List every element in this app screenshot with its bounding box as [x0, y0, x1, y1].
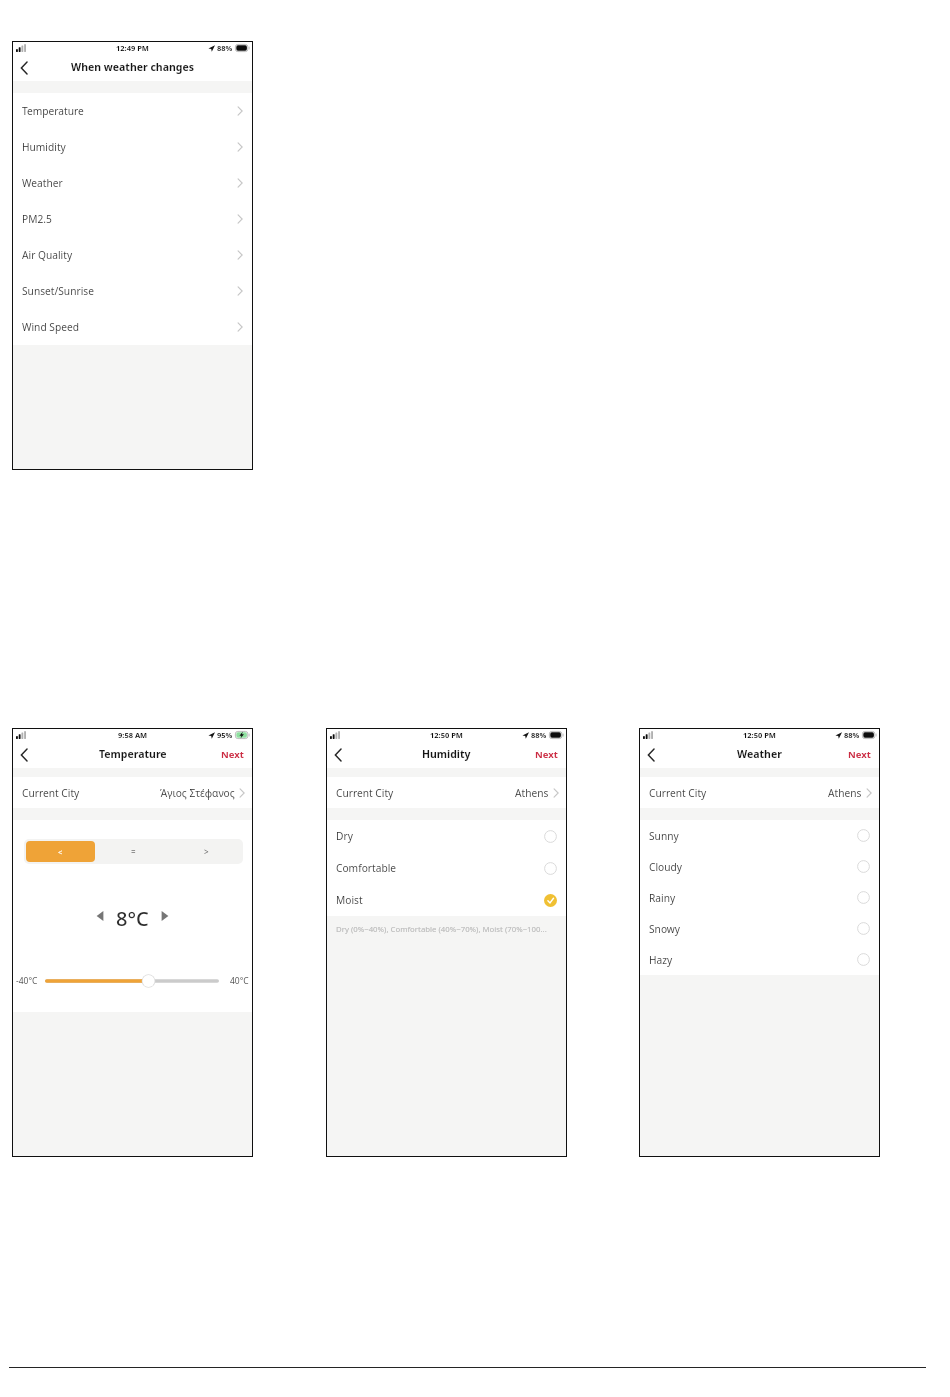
button[interactable]: Back — [327, 741, 349, 768]
staticText: Comfortable — [336, 861, 544, 875]
button[interactable]: Next — [527, 741, 566, 768]
staticText: Sunny — [649, 829, 857, 843]
staticText: 88% — [531, 730, 547, 740]
button[interactable]: Hazy — [640, 944, 879, 975]
button[interactable]: Decrease — [92, 908, 108, 924]
staticText: Moist — [336, 893, 544, 907]
staticText: PM2.5 — [22, 212, 237, 226]
staticText: Temperature — [22, 104, 237, 118]
staticText: Sunset/Sunrise — [22, 284, 237, 298]
staticText: Humidity — [422, 747, 471, 761]
staticText: Next — [848, 748, 871, 761]
staticText: Dry (0%~40%), Comfortable (40%~70%), Moi… — [336, 924, 547, 935]
staticText: Weather — [22, 176, 237, 190]
staticText: 88% — [844, 730, 860, 740]
button[interactable]: Current City — [640, 777, 879, 808]
button[interactable]: Comfortable — [327, 852, 566, 884]
staticText: 88% — [217, 43, 233, 53]
button[interactable]: Humidity — [13, 129, 252, 165]
button[interactable]: Back — [13, 54, 35, 81]
staticText: 12:49 PM — [116, 43, 149, 53]
button[interactable]: Sunset/Sunrise — [13, 273, 252, 309]
staticText: Air Quality — [22, 248, 237, 262]
staticText: Athens — [515, 786, 549, 800]
staticText: 9:58 AM — [118, 730, 148, 740]
staticText: Dry — [336, 829, 544, 843]
staticText: When weather changes — [71, 60, 194, 74]
staticText: Temperature — [99, 747, 167, 761]
button[interactable]: Moist — [327, 884, 566, 916]
staticText: Next — [535, 748, 558, 761]
staticText: Next — [221, 748, 244, 761]
staticText: Humidity — [22, 140, 237, 154]
button[interactable]: Next — [840, 741, 879, 768]
button[interactable]: Cloudy — [640, 851, 879, 882]
button[interactable]: = — [97, 839, 170, 864]
staticText: Cloudy — [649, 860, 857, 874]
button[interactable]: Next — [213, 741, 252, 768]
button[interactable]: PM2.5 — [13, 201, 252, 237]
staticText: Snowy — [649, 922, 857, 936]
staticText: Rainy — [649, 891, 857, 905]
staticText: 40°C — [230, 975, 249, 987]
button[interactable]: Current City — [13, 777, 252, 808]
staticText: 12:50 PM — [430, 730, 463, 740]
button[interactable]: < — [26, 841, 95, 862]
staticText: > — [204, 846, 209, 857]
staticText: Hazy — [649, 953, 857, 967]
staticText: -40°C — [16, 975, 38, 987]
staticText: Άγιος Στέφανος — [160, 786, 235, 800]
staticText: Current City — [336, 786, 515, 800]
button[interactable]: Snowy — [640, 913, 879, 944]
staticText: = — [131, 846, 136, 857]
button[interactable]: Wind Speed — [13, 309, 252, 345]
button[interactable]: Increase — [157, 908, 173, 924]
button[interactable]: Weather — [13, 165, 252, 201]
staticText: Weather — [737, 747, 782, 761]
staticText: 12:50 PM — [743, 730, 776, 740]
staticText: < — [58, 847, 63, 857]
staticText: 8°C — [116, 905, 149, 927]
button[interactable]: Temperature — [13, 93, 252, 129]
button[interactable]: Sunny — [640, 820, 879, 851]
button[interactable]: Back — [13, 741, 35, 768]
staticText: Current City — [649, 786, 828, 800]
button[interactable]: Back — [640, 741, 662, 768]
button[interactable]: Dry — [327, 820, 566, 852]
staticText: Current City — [22, 786, 160, 800]
button[interactable]: Rainy — [640, 882, 879, 913]
staticText: 95% — [217, 730, 233, 740]
button[interactable]: Current City — [327, 777, 566, 808]
button[interactable]: Air Quality — [13, 237, 252, 273]
staticText: Wind Speed — [22, 320, 237, 334]
staticText: Athens — [828, 786, 862, 800]
button[interactable]: > — [170, 839, 243, 864]
